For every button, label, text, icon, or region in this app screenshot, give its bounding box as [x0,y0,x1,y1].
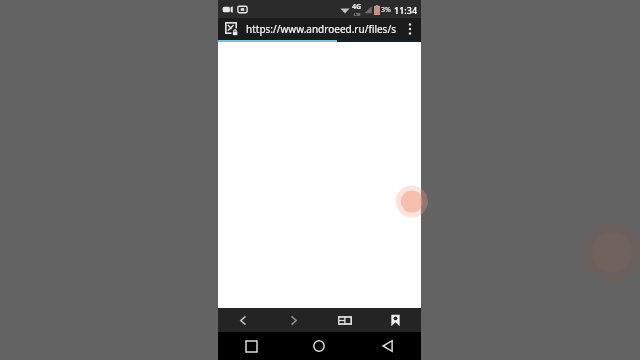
button[interactable]: https://www.androeed.ru/files/s [246,22,399,36]
button[interactable]: Reader mode [319,308,370,332]
button[interactable]: Page info [224,21,240,37]
button[interactable]: Bookmark [370,308,421,332]
button[interactable]: Home [285,332,353,360]
staticText: LTE [354,12,361,17]
button[interactable]: Forward [268,308,319,332]
staticText: 11:34 [394,4,418,16]
button[interactable]: More options [401,18,419,40]
button[interactable]: Recents [218,332,285,360]
button[interactable]: Back [218,308,268,332]
staticText: 4G [352,2,362,12]
staticText: 3% [381,5,391,15]
button[interactable]: Back [353,332,421,360]
staticText: https://www.androeed.ru/files/s [246,22,396,36]
